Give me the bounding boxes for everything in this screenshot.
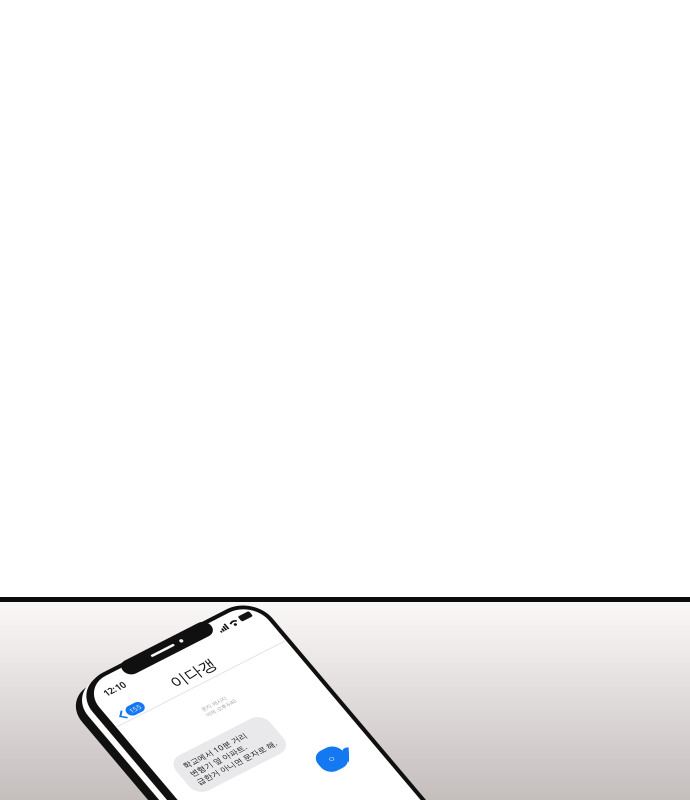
staticText: 학교에서 10분 거리 변형기 옆 아파트. 급한거 아니면 문자로 해. [31,720,119,752]
staticText: 문자 메시지 어제 오후 6:40 [83,679,116,693]
staticText: ㅇ [148,783,156,793]
